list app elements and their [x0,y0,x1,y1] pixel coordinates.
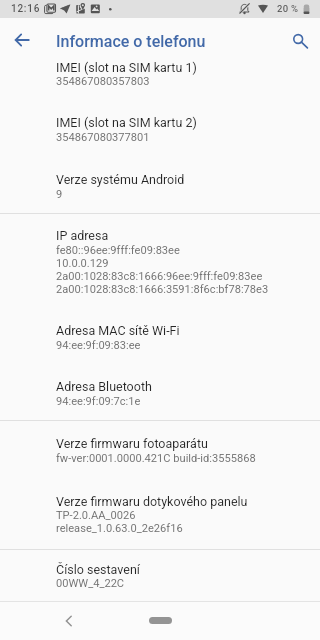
staticText: 94:ee:9f:09:7c:1e [56,395,141,408]
staticText: IMEI (slot na SIM kartu 1) [56,60,197,75]
staticText: Verze systému Android [56,172,185,187]
staticText: 00WW_4_22C [56,577,125,590]
button[interactable]: Verze systému Android [0,163,320,213]
staticText: 12:16 [11,3,41,15]
button[interactable]: IMEI (slot na SIM kartu 1) [0,51,320,107]
staticText: Adresa MAC sítě Wi-Fi [56,323,180,338]
button[interactable]: IMEI (slot na SIM kartu 2) [0,107,320,163]
staticText: 354867080357803 [56,75,150,88]
staticText: IP adresa [56,228,109,243]
staticText: TP-2.0.AA_0026 release_1.0.63.0_2e26f16 [56,509,183,535]
staticText: Číslo sestavení [56,562,140,577]
button[interactable]: Adresa MAC sítě Wi-Fi [0,314,320,370]
staticText: Verze firmwaru fotoaparátu [56,436,208,451]
button[interactable]: Home [149,617,172,624]
staticText: 9 [56,188,63,201]
staticText: Informace o telefonu [56,32,206,51]
button[interactable]: Verze firmwaru fotoaparátu [0,427,320,483]
staticText: 20 % [277,3,299,14]
staticText: Adresa Bluetooth [56,379,152,394]
staticText: 354867080377801 [56,131,150,144]
staticText: fw-ver:0001.0000.421C build-id:3555868 [56,452,256,465]
staticText: fe80::96ee:9fff:fe09:83ee 10.0.0.129 2a0… [56,244,269,296]
staticText: 94:ee:9f:09:83:ee [56,339,141,352]
button[interactable]: Back [55,607,82,634]
button[interactable]: Back [8,26,36,54]
button[interactable]: IP adresa [0,219,320,314]
button[interactable]: Adresa Bluetooth [0,370,320,420]
button[interactable]: Verze firmwaru dotykového panelu [0,483,320,548]
staticText: Verze firmwaru dotykového panelu [56,494,248,509]
staticText: IMEI (slot na SIM kartu 2) [56,115,197,130]
button[interactable]: Číslo sestavení [0,553,320,602]
button[interactable]: Search [285,26,313,54]
